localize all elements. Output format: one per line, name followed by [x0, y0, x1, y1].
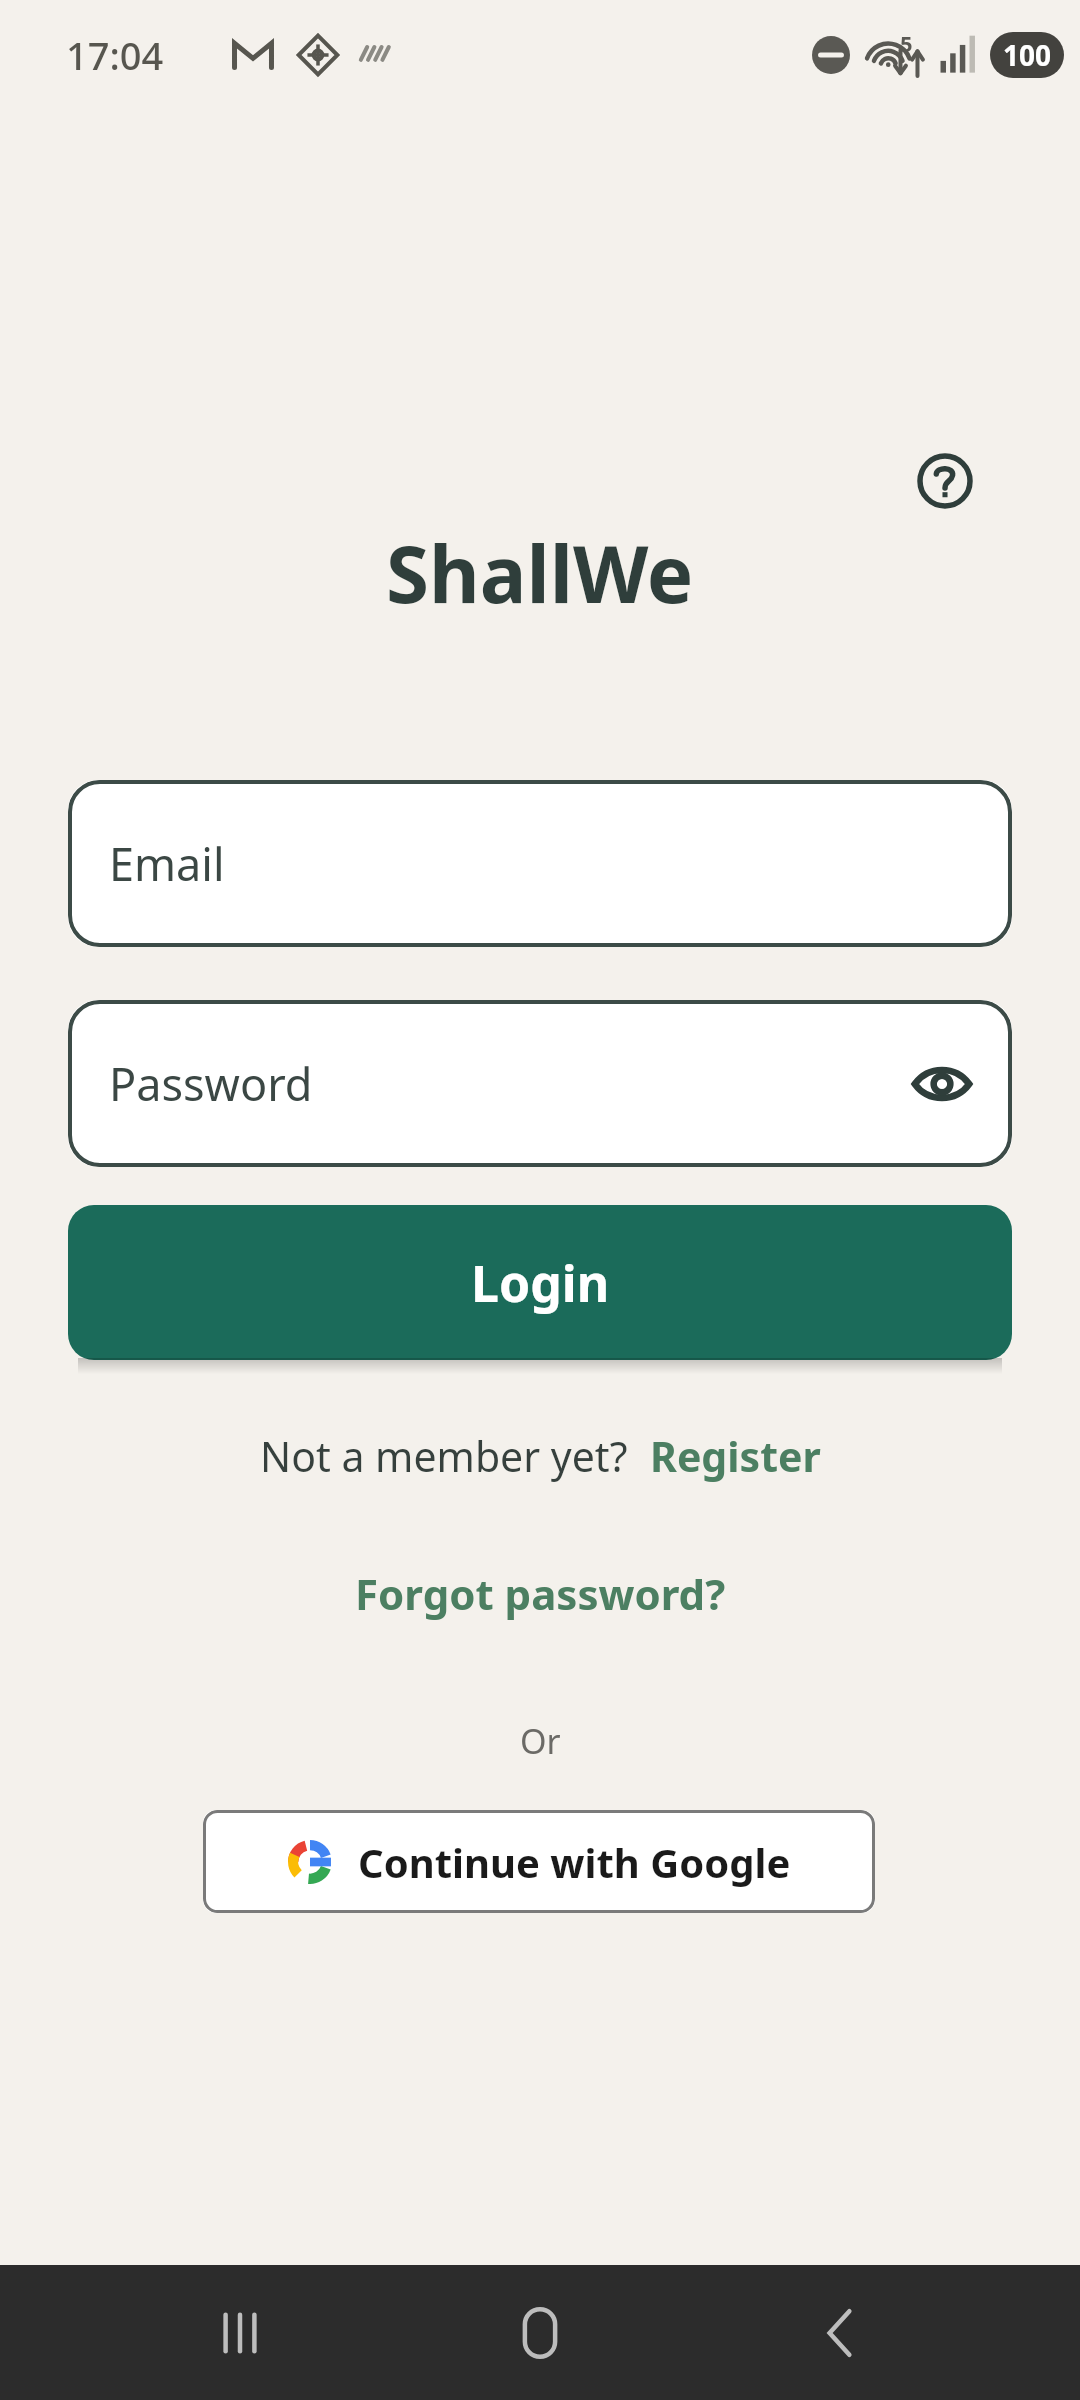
button[interactable]: Login: [68, 1205, 1012, 1360]
button[interactable]: Back: [785, 2278, 895, 2388]
button[interactable]: Recent apps: [185, 2278, 295, 2388]
button[interactable]: Register: [650, 1428, 821, 1484]
button[interactable]: Password: [68, 1000, 1012, 1167]
staticText: 5: [900, 28, 913, 58]
staticText: Register: [650, 1428, 821, 1484]
button[interactable]: Continue with Google: [203, 1810, 875, 1913]
button[interactable]: Show password: [904, 1046, 980, 1122]
button[interactable]: Email: [68, 780, 1012, 947]
staticText: Forgot password?: [355, 1565, 726, 1622]
staticText: ShallWe: [386, 520, 694, 626]
staticText: Email: [109, 833, 225, 894]
staticText: Not a member yet?: [260, 1428, 628, 1484]
staticText: 100: [1003, 36, 1052, 74]
staticText: Login: [471, 1249, 610, 1317]
staticText: 17:04: [66, 29, 164, 81]
staticText: Or: [520, 1718, 561, 1764]
button[interactable]: Help: [903, 439, 987, 523]
button[interactable]: Forgot password?: [355, 1565, 726, 1622]
staticText: Continue with Google: [358, 1835, 791, 1889]
staticText: Password: [109, 1053, 313, 1114]
button[interactable]: Home: [485, 2278, 595, 2388]
